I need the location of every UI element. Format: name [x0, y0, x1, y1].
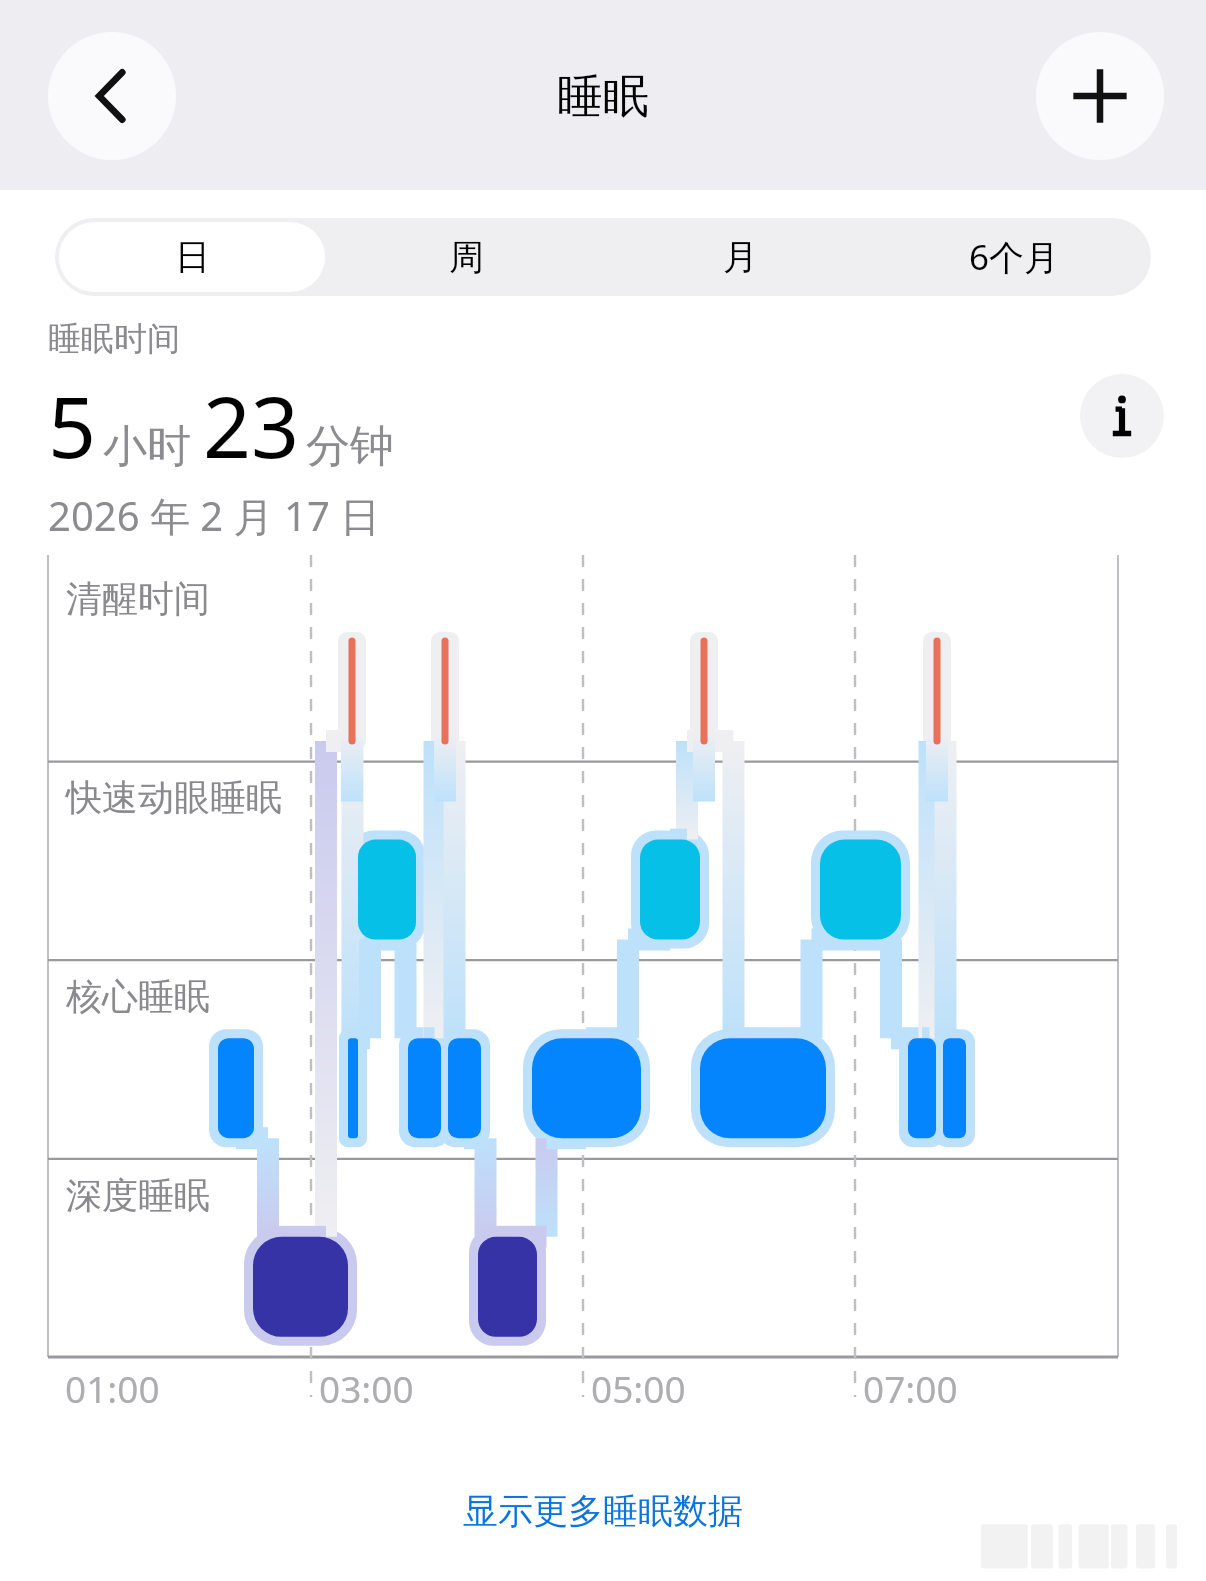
button[interactable]: 周: [333, 222, 599, 292]
button[interactable]: Information: [1080, 374, 1164, 458]
staticText: 分钟: [306, 419, 394, 474]
button[interactable]: Back: [48, 32, 176, 160]
staticText: 快速动眼睡眠: [66, 775, 282, 820]
staticText: 01:00: [65, 1363, 160, 1413]
staticText: 23: [203, 368, 300, 482]
button[interactable]: Add: [1036, 32, 1164, 160]
staticText: 07:00: [863, 1363, 958, 1413]
staticText: 显示更多睡眠数据: [463, 1489, 743, 1533]
button[interactable]: 日: [59, 222, 325, 292]
staticText: 清醒时间: [66, 576, 210, 621]
staticText: 睡眠: [557, 68, 649, 126]
staticText: 深度睡眠: [66, 1173, 210, 1218]
staticText: 小时: [103, 419, 191, 474]
staticText: 05:00: [591, 1363, 686, 1413]
staticText: 03:00: [319, 1363, 414, 1413]
button[interactable]: 显示更多睡眠数据: [453, 1483, 753, 1539]
staticText: 核心睡眠: [66, 974, 210, 1019]
staticText: 睡眠时间: [48, 318, 180, 360]
staticText: 周: [449, 235, 484, 279]
staticText: 月: [723, 235, 758, 279]
staticText: 5: [48, 368, 97, 482]
staticText: 6个月: [969, 233, 1060, 281]
staticText: 日: [175, 235, 210, 279]
button[interactable]: 6个月: [881, 222, 1147, 292]
button[interactable]: 月: [607, 222, 873, 292]
staticText: 2026 年 2 月 17 日: [48, 488, 381, 543]
